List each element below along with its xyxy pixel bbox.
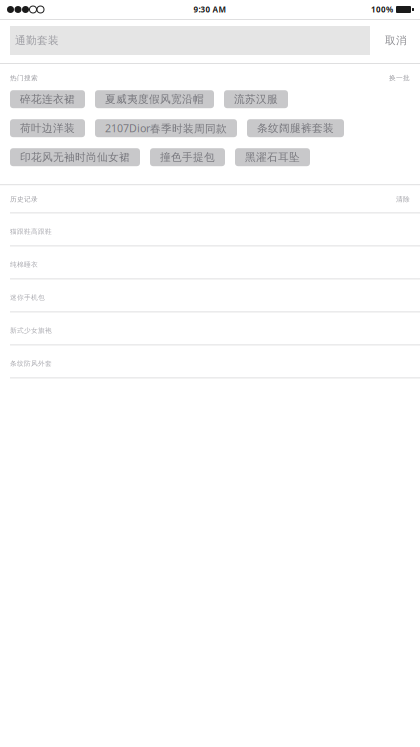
button[interactable]: 条纹阔腿裤套装 — [247, 119, 344, 137]
staticText: 清除 — [396, 195, 410, 203]
staticText: 100% — [371, 4, 393, 15]
staticText: 通勤套装 — [15, 34, 59, 47]
button[interactable]: 荷叶边洋装 — [10, 119, 85, 137]
staticText: 印花风无袖时尚仙女裙 — [20, 151, 130, 164]
staticText: 流苏汉服 — [234, 93, 278, 106]
button[interactable]: 通勤套装 — [10, 26, 370, 55]
staticText: 迷你手机包 — [10, 293, 45, 302]
staticText: 9:30 AM — [193, 4, 226, 15]
button[interactable]: 2107Dior春季时装周同款 — [95, 119, 237, 137]
button[interactable]: 撞色手提包 — [150, 148, 225, 166]
staticText: 新式少女旗袍 — [10, 326, 52, 335]
staticText: 取消 — [385, 34, 407, 47]
staticText: 条纹防风外套 — [10, 359, 52, 368]
staticText: 黑濯石耳坠 — [245, 151, 300, 164]
staticText: 纯棉睡衣 — [10, 260, 38, 269]
button[interactable]: 猫跟鞋高跟鞋 — [0, 212, 420, 245]
button[interactable]: 换一批 — [365, 74, 410, 82]
staticText: 换一批 — [389, 74, 410, 82]
staticText: 撞色手提包 — [160, 151, 215, 164]
button[interactable]: 黑濯石耳坠 — [235, 148, 310, 166]
button[interactable]: 碎花连衣裙 — [10, 90, 85, 108]
staticText: 历史记录 — [10, 195, 38, 203]
staticText: 2107Dior春季时装周同款 — [105, 121, 227, 135]
button[interactable]: 夏威夷度假风宽沿帽 — [95, 90, 214, 108]
button[interactable]: 新式少女旗袍 — [0, 311, 420, 344]
button[interactable]: 印花风无袖时尚仙女裙 — [10, 148, 140, 166]
staticText: 碎花连衣裙 — [20, 93, 75, 106]
staticText: 夏威夷度假风宽沿帽 — [105, 93, 204, 106]
button[interactable]: 流苏汉服 — [224, 90, 288, 108]
button[interactable]: 清除 — [372, 195, 410, 203]
button[interactable]: 迷你手机包 — [0, 278, 420, 311]
staticText: 热门搜索 — [10, 74, 38, 82]
staticText: 荷叶边洋装 — [20, 122, 75, 135]
button[interactable]: 纯棉睡衣 — [0, 245, 420, 278]
staticText: 猫跟鞋高跟鞋 — [10, 227, 52, 236]
button[interactable]: 取消 — [381, 26, 411, 55]
button[interactable]: 条纹防风外套 — [0, 344, 420, 377]
staticText: 条纹阔腿裤套装 — [257, 122, 334, 135]
